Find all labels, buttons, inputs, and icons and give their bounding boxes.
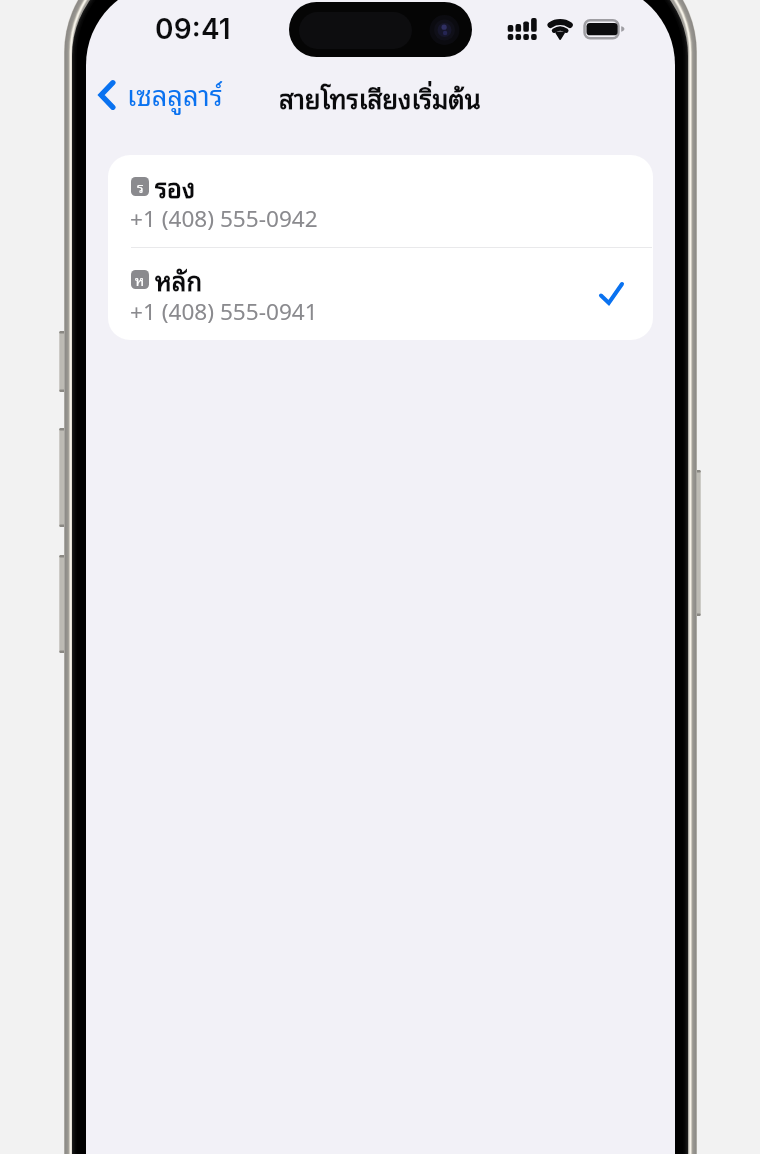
staticText: ห <box>135 270 145 287</box>
button[interactable]: ร <box>108 155 653 247</box>
button[interactable]: เซลลูลาร์ <box>88 72 223 116</box>
staticText: สายโทรเสียงเริ่มต้น <box>279 77 481 118</box>
staticText: +1 (408) 555-0942 <box>130 203 318 234</box>
button[interactable]: ห <box>108 248 653 340</box>
staticText: ร <box>137 177 144 194</box>
staticText: เซลลูลาร์ <box>127 72 223 116</box>
staticText: รอง <box>155 166 196 204</box>
staticText: 09:41 <box>155 12 231 46</box>
staticText: หลัก <box>155 259 203 297</box>
staticText: +1 (408) 555-0941 <box>130 296 318 327</box>
other: Selected <box>599 282 624 306</box>
